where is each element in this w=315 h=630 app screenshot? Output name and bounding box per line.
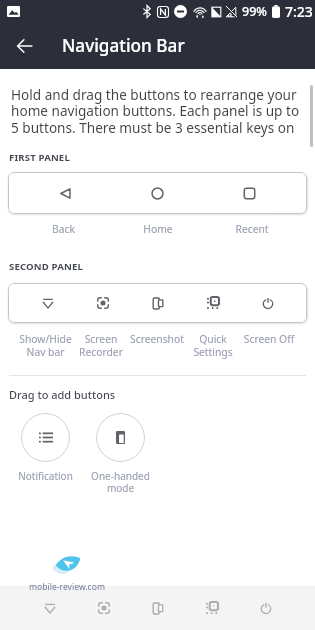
- staticText: Screenshot: [129, 332, 185, 346]
- staticText: Hold and drag the buttons to rearrange y…: [11, 85, 306, 137]
- staticText: FIRST PANEL: [9, 151, 70, 164]
- button[interactable]: Show or hide nav bar: [20, 283, 75, 323]
- button[interactable]: Screen Recorder: [75, 283, 130, 323]
- staticText: Navigation Bar: [62, 34, 185, 57]
- staticText: Home: [111, 222, 205, 236]
- button[interactable]: Show or hide nav bar: [22, 586, 77, 630]
- staticText: One-handed mode: [91, 469, 150, 495]
- staticText: Back: [16, 222, 111, 236]
- staticText: 7:23: [285, 2, 313, 21]
- button[interactable]: Back: [20, 172, 111, 214]
- staticText: Screen Off: [241, 332, 297, 346]
- staticText: mobile-review.com: [29, 581, 105, 593]
- staticText: 99%: [242, 3, 267, 20]
- button[interactable]: Screen Off: [240, 283, 295, 323]
- button[interactable]: Screenshot: [131, 586, 185, 630]
- button[interactable]: [21, 413, 70, 462]
- staticText: Quick Settings: [185, 332, 241, 359]
- staticText: Drag to add buttons: [9, 387, 116, 402]
- staticText: Show/Hide Nav bar: [18, 332, 73, 359]
- button[interactable]: Screen Off: [239, 586, 293, 630]
- staticText: Notification: [18, 469, 73, 483]
- button[interactable]: Home: [111, 172, 203, 214]
- button[interactable]: [96, 413, 145, 462]
- button[interactable]: Quick Settings: [185, 586, 239, 630]
- button[interactable]: Screen Recorder: [77, 586, 131, 630]
- button[interactable]: Quick Settings: [185, 283, 240, 323]
- button[interactable]: Recent: [203, 172, 295, 214]
- staticText: SECOND PANEL: [9, 260, 83, 273]
- staticText: Screen Recorder: [73, 332, 129, 359]
- button[interactable]: Back: [0, 22, 48, 69]
- button[interactable]: Screenshot: [130, 283, 185, 323]
- staticText: Recent: [205, 222, 299, 236]
